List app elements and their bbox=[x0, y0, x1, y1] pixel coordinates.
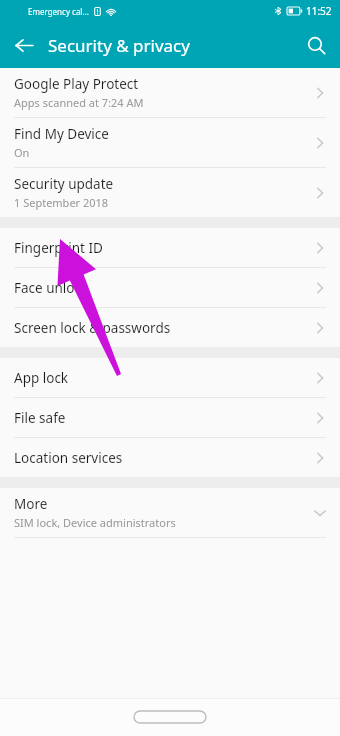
staticText: Apps scanned at 7:24 AM bbox=[14, 95, 144, 110]
button[interactable]: Security update bbox=[0, 168, 340, 217]
staticText: Face unlock bbox=[14, 279, 89, 297]
staticText: 11:52 bbox=[306, 4, 332, 18]
button[interactable]: Home bbox=[134, 711, 206, 723]
staticText: Find My Device bbox=[14, 125, 109, 143]
staticText: More bbox=[14, 495, 48, 513]
staticText: Screen lock & passwords bbox=[14, 319, 171, 337]
button[interactable]: App lock bbox=[0, 358, 340, 397]
button[interactable]: File safe bbox=[0, 398, 340, 437]
button[interactable]: Screen lock & passwords bbox=[0, 308, 340, 347]
staticText: 1 September 2018 bbox=[14, 195, 109, 210]
button[interactable]: Location services bbox=[0, 438, 340, 477]
staticText: Emergency cal... bbox=[28, 6, 89, 17]
staticText: Security update bbox=[14, 175, 114, 193]
button[interactable]: Find My Device bbox=[0, 118, 340, 167]
button[interactable]: Search bbox=[296, 25, 336, 65]
staticText: Fingerprint ID bbox=[14, 239, 103, 257]
button[interactable]: Google Play Protect bbox=[0, 68, 340, 117]
button[interactable]: More bbox=[0, 488, 340, 537]
staticText: Security & privacy bbox=[48, 34, 190, 57]
staticText: SIM lock, Device administrators bbox=[14, 515, 176, 530]
staticText: App lock bbox=[14, 369, 69, 387]
button[interactable]: Back bbox=[6, 27, 42, 63]
staticText: File safe bbox=[14, 409, 66, 427]
button[interactable]: Face unlock bbox=[0, 268, 340, 307]
button[interactable]: Fingerprint ID bbox=[0, 228, 340, 267]
staticText: Google Play Protect bbox=[14, 75, 139, 93]
staticText: On bbox=[14, 145, 30, 160]
staticText: Location services bbox=[14, 449, 123, 467]
